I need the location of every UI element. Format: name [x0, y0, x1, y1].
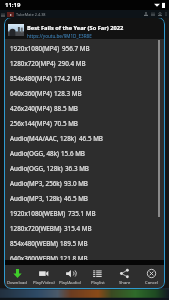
- button[interactable]: 854x480(WEBM): [4, 236, 165, 251]
- staticText: 426x240(MP4): [10, 104, 52, 113]
- staticText: 1280x720(MP4): [10, 59, 56, 68]
- staticText: TubeMate 2.4.38: [16, 12, 46, 17]
- staticText: 46.5 MB: [64, 194, 88, 203]
- staticText: 36.3 MB: [65, 164, 89, 173]
- button[interactable]: Audio(M4A/AAC, 128k): [4, 131, 165, 146]
- staticText: 854x480(MP4): [10, 74, 52, 83]
- staticText: 70.5 MB: [54, 119, 78, 128]
- staticText: Cancel: [145, 280, 159, 286]
- staticText: Playlist: [91, 280, 105, 286]
- staticText: Play(Audio): [59, 280, 82, 286]
- button[interactable]: Audio(OGG, 128k): [4, 161, 165, 176]
- staticText: 128.3 MB: [54, 89, 82, 98]
- staticText: Download: [7, 280, 27, 286]
- staticText: 88.5 MB: [54, 104, 78, 113]
- other: Cancel: [146, 268, 157, 279]
- staticText: 15.6 MB: [61, 149, 85, 158]
- button[interactable]: 256x144(MP4): [4, 116, 165, 131]
- button[interactable]: Playlist: [84, 265, 111, 289]
- button[interactable]: Audio(OGG, 48k): [4, 146, 165, 161]
- staticText: Audio(MP3, 256k): [10, 179, 62, 188]
- staticText: Audio(MP3, 128k): [10, 194, 62, 203]
- staticText: 956.7 MB: [62, 44, 90, 53]
- staticText: Play(Video): [33, 280, 55, 286]
- button[interactable]: 1920x1080(WEBM): [4, 206, 165, 221]
- staticText: 1280x720(WEBM): [10, 224, 62, 233]
- staticText: 1920x1080(MP4): [10, 44, 60, 53]
- staticText: Audio(OGG, 128k): [10, 164, 63, 173]
- staticText: Audio(OGG, 48k): [10, 149, 59, 158]
- staticText: 854x480(WEBM): [10, 239, 58, 248]
- staticText: 256x144(MP4): [10, 119, 52, 128]
- button[interactable]: Play Video: [30, 265, 57, 289]
- button[interactable]: 426x240(MP4): [4, 101, 165, 116]
- staticText: 11:19: [5, 1, 21, 9]
- staticText: Audio(M4A/AAC, 128k): [10, 134, 77, 143]
- staticText: 174.2 MB: [54, 74, 82, 83]
- button[interactable]: 1280x720(WEBM): [4, 221, 165, 236]
- button[interactable]: Download: [4, 265, 30, 289]
- button[interactable]: Play Audio: [57, 265, 84, 289]
- button[interactable]: 854x480(MP4): [4, 71, 165, 86]
- staticText: https://youtu.be/9M1D_E3R8E: [27, 33, 92, 39]
- button[interactable]: 1920x1080(MP4): [4, 41, 165, 56]
- other: Play Video: [38, 268, 49, 279]
- button[interactable]: Best Fails of the Year (So Far) 2022: [4, 17, 165, 39]
- staticText: 290.4 MB: [58, 59, 86, 68]
- staticText: 735.1 MB: [68, 209, 96, 218]
- staticText: 189.5 MB: [60, 239, 88, 248]
- other: Download: [12, 268, 23, 279]
- button[interactable]: 640x360(WEBM): [4, 251, 165, 260]
- other: Playlist: [92, 268, 103, 279]
- staticText: 46.5 MB: [79, 134, 103, 143]
- button[interactable]: Audio(MP3, 128k): [4, 191, 165, 206]
- button[interactable]: Cancel: [138, 265, 165, 289]
- staticText: 315.4 MB: [64, 224, 92, 233]
- staticText: Best Fails of the Year (So Far) 2022: [27, 24, 124, 32]
- button[interactable]: Share: [111, 265, 138, 289]
- other: Play Audio: [65, 268, 76, 279]
- other: Share: [119, 268, 130, 279]
- button[interactable]: Audio(MP3, 256k): [4, 176, 165, 191]
- button[interactable]: 1280x720(MP4): [4, 56, 165, 71]
- button[interactable]: 640x360(MP4): [4, 86, 165, 101]
- staticText: 640x360(MP4): [10, 89, 52, 98]
- staticText: 640x360(WEBM): [10, 254, 58, 260]
- staticText: 1920x1080(WEBM): [10, 209, 66, 218]
- staticText: 93.0 MB: [64, 179, 88, 188]
- staticText: 121.8 MB: [60, 254, 88, 260]
- staticText: Share: [119, 280, 131, 286]
